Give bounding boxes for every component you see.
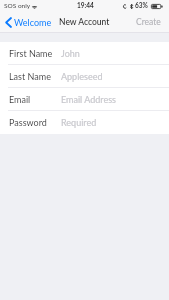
staticText: Email: [9, 94, 31, 105]
other: Battery 63 percent: [151, 4, 163, 9]
staticText: John: [61, 48, 80, 59]
other: Bluetooth: [130, 4, 133, 9]
other: Rotation lock: [123, 4, 127, 9]
button[interactable]: Back: [0, 14, 57, 31]
staticText: Email Address: [61, 94, 116, 105]
staticText: SOS only: [4, 2, 31, 10]
staticText: Welcome: [14, 17, 52, 28]
staticText: First Name: [9, 48, 53, 59]
button[interactable]: Password: [0, 111, 169, 134]
staticText: Required: [61, 117, 97, 128]
button[interactable]: Create: [128, 14, 169, 30]
staticText: Appleseed: [61, 71, 103, 82]
other: Wi-Fi: [32, 4, 37, 9]
other: Back: [5, 17, 12, 28]
staticText: Password: [9, 117, 47, 128]
button[interactable]: First Name: [0, 42, 169, 65]
button[interactable]: Last Name: [0, 65, 169, 88]
staticText: New Account: [59, 17, 110, 27]
button[interactable]: Email: [0, 88, 169, 111]
staticText: Last Name: [9, 71, 51, 82]
staticText: 63%: [135, 2, 148, 10]
staticText: Create: [136, 17, 161, 27]
staticText: 19:44: [77, 2, 94, 10]
